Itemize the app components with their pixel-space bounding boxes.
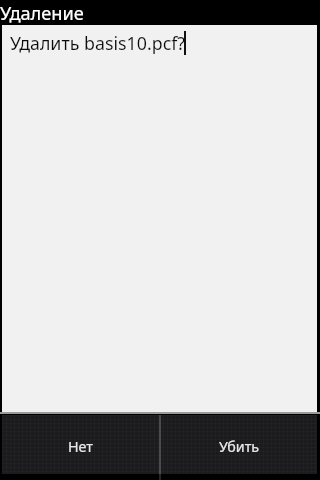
button[interactable]: Edit message <box>2 25 317 412</box>
button[interactable]: Удаление <box>0 0 320 25</box>
staticText: Убить <box>219 437 260 456</box>
staticText: Удалить basis10.pcf? <box>10 31 186 55</box>
staticText: Нет <box>68 437 94 456</box>
button[interactable]: Убить <box>159 415 317 474</box>
staticText: Удаление <box>0 1 84 26</box>
button[interactable]: Нет <box>2 415 159 474</box>
